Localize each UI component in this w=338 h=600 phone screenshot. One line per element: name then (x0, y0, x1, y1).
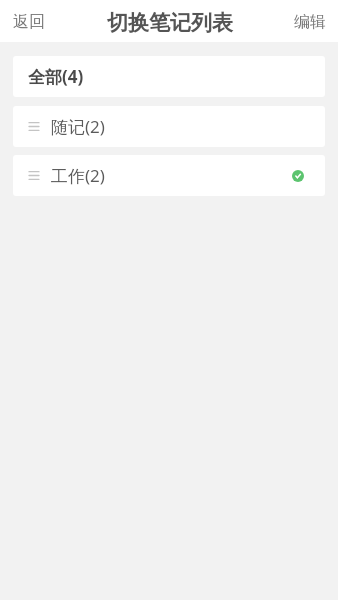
staticText: 随记(2) (51, 115, 105, 138)
staticText: 返回 (13, 12, 45, 32)
button[interactable]: 工作(2) (13, 155, 325, 196)
button[interactable]: 随记(2) (13, 106, 325, 147)
button[interactable]: 全部(4) (13, 56, 325, 97)
staticText: 编辑 (294, 12, 326, 32)
button[interactable]: 编辑 (282, 4, 338, 40)
button[interactable]: 返回 (0, 4, 57, 40)
staticText: 工作(2) (51, 164, 105, 187)
staticText: 切换笔记列表 (107, 10, 233, 36)
button[interactable]: Selected (283, 161, 313, 191)
staticText: 全部(4) (28, 65, 84, 88)
